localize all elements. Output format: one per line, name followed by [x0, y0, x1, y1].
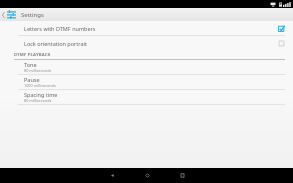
staticText: Spacing time	[24, 91, 58, 98]
staticText: Tone	[24, 61, 37, 68]
button[interactable]: Back	[97, 168, 127, 183]
button[interactable]: Pause	[0, 75, 293, 89]
button[interactable]: Home	[132, 168, 162, 183]
staticText: DTMF PLAYBACK	[14, 52, 51, 58]
staticText: Lock orientation portrait	[24, 40, 278, 47]
staticText: Settings	[21, 11, 44, 19]
staticText: Letters with DTMF numbers	[24, 25, 278, 32]
button[interactable]: Spacing time	[0, 90, 293, 104]
button[interactable]: Recent apps	[167, 168, 197, 183]
staticText: 80 milliseconds	[24, 68, 52, 73]
button[interactable]: Tone	[0, 60, 293, 74]
staticText: 80 milliseconds	[24, 98, 52, 103]
staticText: 1000 milliseconds	[24, 83, 56, 88]
button[interactable]: Letters with DTMF numbers	[0, 21, 293, 35]
button[interactable]: Lock orientation portrait	[0, 36, 293, 50]
staticText: Pause	[24, 76, 40, 83]
button[interactable]: Navigate up	[0, 8, 19, 21]
